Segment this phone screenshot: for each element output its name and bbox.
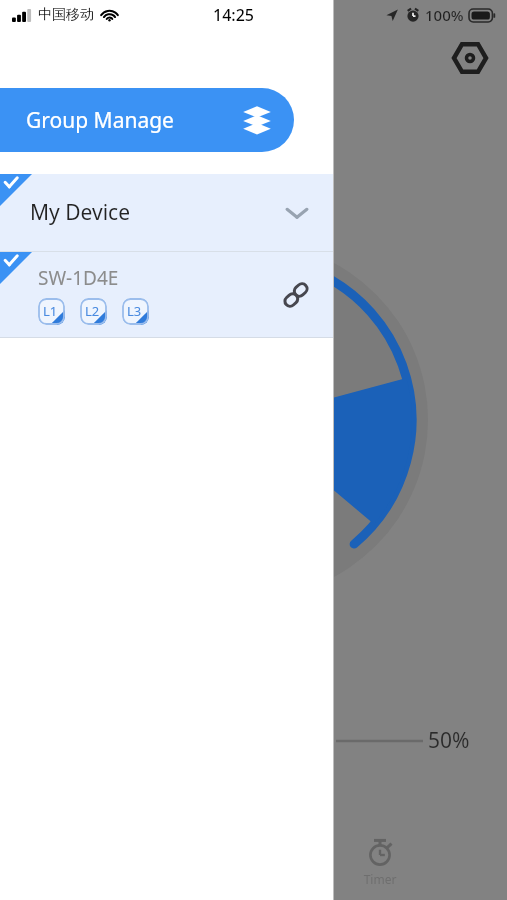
staticText: 100% — [425, 5, 464, 25]
staticText: L1 — [43, 302, 58, 320]
button[interactable]: My Device — [0, 174, 334, 251]
button[interactable]: L2 — [80, 298, 107, 325]
staticText: 14:25 — [213, 4, 254, 26]
staticText: L3 — [127, 302, 142, 320]
staticText: 50% — [428, 726, 470, 755]
staticText: 中国移动 — [38, 6, 94, 24]
button[interactable]: L3 — [122, 298, 149, 325]
staticText: My Device — [30, 198, 130, 227]
button[interactable]: L1 — [38, 298, 65, 325]
button[interactable]: Timer — [350, 838, 410, 887]
button[interactable]: Group Manage — [0, 88, 294, 152]
staticText: Group Manage — [26, 106, 174, 135]
button[interactable]: SW-1D4E — [0, 252, 334, 337]
staticText: Timer — [350, 871, 410, 887]
button[interactable]: Link device — [278, 277, 314, 313]
staticText: L2 — [85, 302, 100, 320]
button[interactable]: Settings — [450, 38, 490, 78]
staticText: SW-1D4E — [38, 265, 119, 291]
